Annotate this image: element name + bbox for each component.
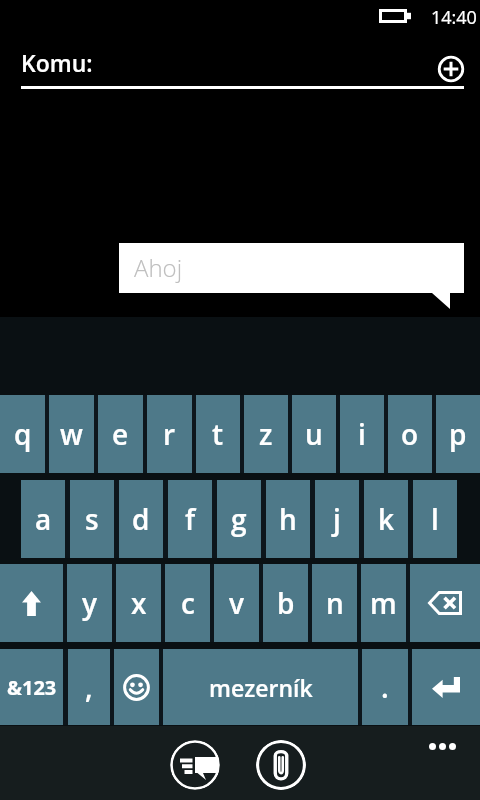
staticText: i <box>358 415 366 453</box>
button[interactable]: More options <box>425 738 460 755</box>
staticText: r <box>163 415 176 453</box>
staticText: p <box>449 415 467 453</box>
button[interactable]: f <box>168 480 212 558</box>
staticText: d <box>132 500 150 538</box>
staticText: o <box>401 415 419 453</box>
button[interactable]: d <box>119 480 163 558</box>
button[interactable]: Add recipient <box>437 55 465 83</box>
button[interactable]: , <box>68 649 110 725</box>
button[interactable]: h <box>266 480 310 558</box>
button[interactable]: e <box>98 395 143 473</box>
staticText: j <box>333 500 341 538</box>
staticText: u <box>305 415 323 453</box>
button[interactable]: o <box>388 395 432 473</box>
staticText: m <box>370 584 397 622</box>
staticText: g <box>231 500 247 538</box>
staticText: l <box>431 500 439 538</box>
staticText: h <box>279 500 297 538</box>
button[interactable]: . <box>362 649 408 725</box>
button[interactable]: v <box>214 564 259 642</box>
button[interactable]: r <box>147 395 192 473</box>
staticText: s <box>85 500 99 538</box>
button[interactable]: j <box>315 480 359 558</box>
button[interactable]: Shift <box>0 564 63 642</box>
button[interactable]: b <box>263 564 308 642</box>
staticText: a <box>35 500 52 538</box>
button[interactable]: y <box>67 564 112 642</box>
button[interactable]: Send message <box>170 740 220 790</box>
staticText: y <box>82 584 97 622</box>
staticText: 14:40 <box>431 5 477 30</box>
button[interactable]: i <box>340 395 384 473</box>
staticText: z <box>259 415 273 453</box>
staticText: c <box>181 584 195 622</box>
button[interactable]: k <box>364 480 408 558</box>
staticText: t <box>212 415 224 453</box>
button[interactable]: a <box>21 480 65 558</box>
button[interactable]: p <box>436 395 480 473</box>
button[interactable]: q <box>0 395 45 473</box>
staticText: n <box>326 584 344 622</box>
staticText: x <box>131 584 147 622</box>
button[interactable]: Emoji <box>114 649 159 725</box>
button[interactable]: w <box>49 395 94 473</box>
button[interactable]: c <box>165 564 210 642</box>
staticText: e <box>112 415 129 453</box>
staticText: w <box>60 415 83 453</box>
button[interactable]: mezerník <box>163 649 358 725</box>
button[interactable]: Enter <box>412 649 480 725</box>
button[interactable]: l <box>413 480 457 558</box>
staticText: , <box>85 668 93 706</box>
button[interactable]: s <box>70 480 114 558</box>
button[interactable]: n <box>312 564 357 642</box>
button[interactable]: Attach file <box>256 740 306 790</box>
staticText: f <box>185 500 196 538</box>
button[interactable]: z <box>244 395 288 473</box>
button[interactable]: t <box>196 395 240 473</box>
staticText: k <box>378 500 395 538</box>
staticText: mezerník <box>209 672 313 703</box>
button[interactable]: g <box>217 480 261 558</box>
button[interactable]: m <box>361 564 406 642</box>
button[interactable]: Backspace <box>410 564 480 642</box>
staticText: q <box>14 415 32 453</box>
button[interactable]: x <box>116 564 161 642</box>
button[interactable]: &123 <box>0 649 63 725</box>
staticText: Ahoj <box>134 251 183 284</box>
staticText: . <box>381 668 389 706</box>
button[interactable]: u <box>292 395 336 473</box>
staticText: &123 <box>7 674 57 701</box>
staticText: b <box>277 584 295 622</box>
staticText: Komu: <box>21 47 93 78</box>
staticText: v <box>229 584 244 622</box>
